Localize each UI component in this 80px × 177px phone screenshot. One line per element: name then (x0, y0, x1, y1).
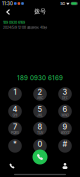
staticText: 189 0930 6169 (17, 74, 63, 82)
staticText: # (62, 139, 67, 148)
staticText: * (13, 139, 17, 148)
button[interactable]: 0 (31, 137, 48, 154)
staticText: 11:30 (2, 1, 13, 6)
button[interactable]: Contacts (59, 160, 71, 172)
button[interactable]: 7 (6, 120, 23, 137)
staticText: PQRS (11, 131, 19, 135)
button[interactable]: 9 (56, 120, 73, 137)
button[interactable]: 5 (31, 103, 48, 120)
staticText: 7 (13, 122, 17, 131)
button[interactable]: * (6, 137, 23, 154)
button[interactable]: 6 (56, 103, 73, 120)
staticText: 3 (62, 87, 67, 96)
button[interactable]: 2 (31, 85, 48, 102)
staticText: JKL (37, 113, 43, 117)
staticText: 2024/5/9 12:08 通话时长 40秒 (3, 26, 47, 30)
button[interactable]: 8 (31, 120, 48, 137)
staticText: GHI (12, 113, 17, 117)
button[interactable]: 3 (56, 85, 73, 102)
button[interactable]: 1 (6, 85, 23, 102)
staticText: 2 (37, 87, 42, 96)
staticText: 5G (60, 1, 65, 6)
staticText: WXYZ (60, 131, 69, 135)
button[interactable]: # (56, 137, 73, 154)
staticText: 4 (12, 105, 17, 114)
staticText: 8 (37, 122, 42, 131)
staticText: 189 0930 6169 (3, 20, 25, 25)
staticText: 1 (13, 87, 16, 96)
button[interactable]: 4 (6, 103, 23, 120)
staticText: 5 (37, 105, 42, 114)
staticText: DEF (62, 96, 68, 100)
staticText: 拨号 (34, 8, 46, 15)
button[interactable]: Back (2, 5, 14, 19)
staticText: 0 (37, 139, 42, 148)
staticText: 9 (62, 122, 67, 131)
button[interactable]: Recents (6, 160, 18, 172)
staticText: ABC (37, 96, 43, 100)
button[interactable]: Call (30, 147, 49, 166)
staticText: + (39, 148, 41, 152)
staticText: 6 (62, 105, 67, 114)
staticText: MNO (61, 113, 68, 117)
staticText: TUV (37, 131, 43, 135)
